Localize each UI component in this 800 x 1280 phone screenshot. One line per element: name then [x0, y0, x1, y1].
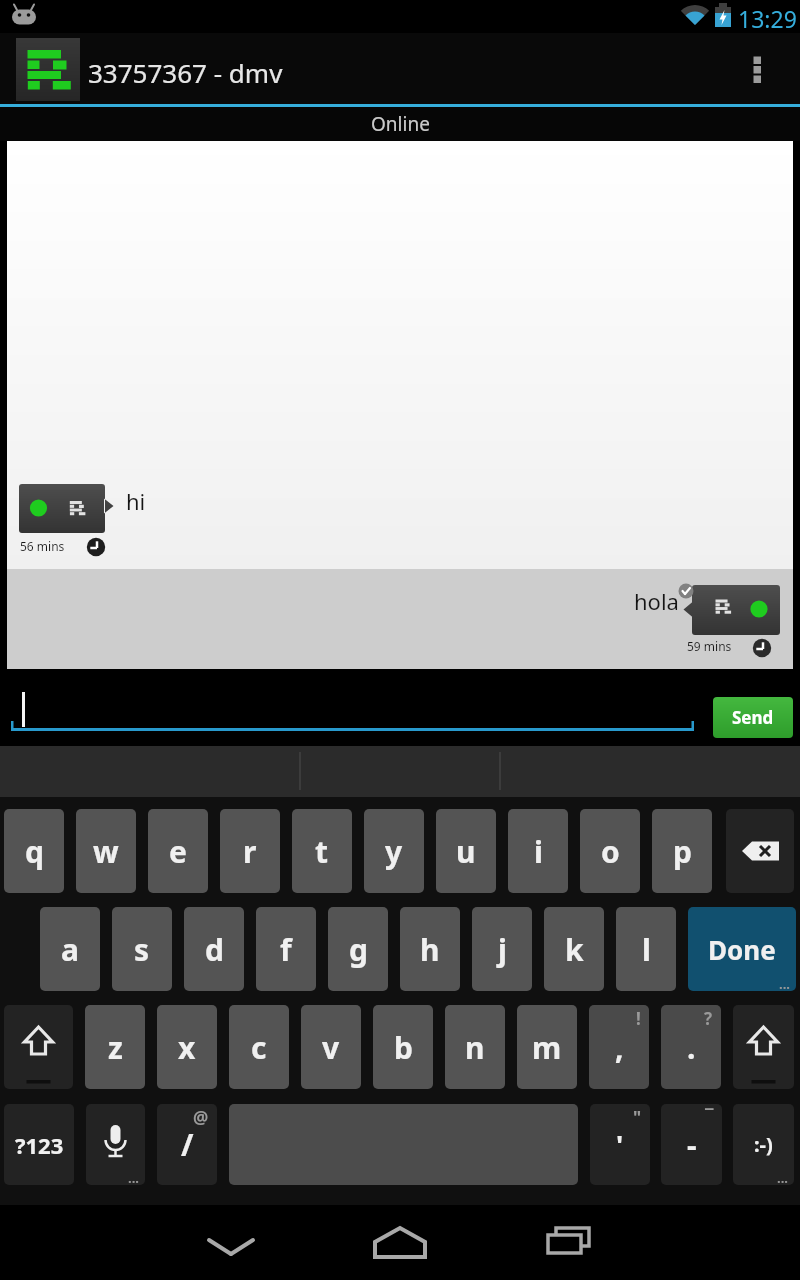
- staticText: c: [251, 1027, 267, 1068]
- button[interactable]: .: [661, 1005, 721, 1089]
- staticText: @: [193, 1106, 209, 1129]
- staticText: Send: [732, 706, 774, 729]
- button[interactable]: h: [400, 907, 460, 991]
- staticText: b: [394, 1027, 413, 1068]
- button[interactable]: ,: [589, 1005, 649, 1089]
- button[interactable]: q: [4, 809, 64, 893]
- staticText: /: [181, 1124, 194, 1165]
- staticText: ‾: [705, 1106, 714, 1129]
- button[interactable]: a: [40, 907, 100, 991]
- staticText: 13:29: [738, 3, 797, 34]
- staticText: 56 mins: [20, 538, 65, 554]
- button[interactable]: p: [652, 809, 712, 893]
- button[interactable]: [4, 1005, 73, 1089]
- staticText: j: [498, 929, 507, 970]
- button[interactable]: f: [256, 907, 316, 991]
- staticText: i: [534, 831, 543, 872]
- button[interactable]: m: [517, 1005, 577, 1089]
- staticText: ?: [704, 1007, 713, 1030]
- staticText: 59 mins: [687, 638, 732, 654]
- button[interactable]: k: [544, 907, 604, 991]
- staticText: .: [687, 1027, 696, 1068]
- staticText: Online: [371, 111, 430, 137]
- staticText: :-): [754, 1131, 773, 1158]
- staticText: s: [134, 929, 150, 970]
- staticText: hola: [634, 586, 679, 616]
- staticText: ...: [779, 975, 790, 991]
- button[interactable]: i: [508, 809, 568, 893]
- staticText: -: [687, 1124, 697, 1165]
- button[interactable]: d: [184, 907, 244, 991]
- staticText: t: [315, 831, 329, 872]
- staticText: o: [601, 831, 620, 872]
- button[interactable]: u: [436, 809, 496, 893]
- button[interactable]: j: [472, 907, 532, 991]
- staticText: !: [636, 1007, 641, 1030]
- button[interactable]: b: [373, 1005, 433, 1089]
- button[interactable]: /: [157, 1104, 217, 1185]
- button[interactable]: t: [292, 809, 352, 893]
- button[interactable]: w: [76, 809, 136, 893]
- button[interactable]: [726, 809, 794, 893]
- button[interactable]: ?123: [4, 1104, 74, 1185]
- staticText: 33757367 - dmv: [88, 55, 283, 90]
- button[interactable]: :-): [733, 1104, 794, 1185]
- button[interactable]: x: [157, 1005, 217, 1089]
- staticText: a: [61, 929, 79, 970]
- button[interactable]: z: [85, 1005, 145, 1089]
- staticText: ...: [777, 1169, 788, 1185]
- button[interactable]: r: [220, 809, 280, 893]
- button[interactable]: g: [328, 907, 388, 991]
- staticText: v: [322, 1027, 340, 1068]
- button[interactable]: [733, 1005, 794, 1089]
- button[interactable]: Done: [688, 907, 796, 991]
- staticText: ,: [615, 1027, 624, 1068]
- staticText: h: [420, 929, 440, 970]
- button[interactable]: Send: [713, 697, 793, 738]
- button[interactable]: c: [229, 1005, 289, 1089]
- button[interactable]: s: [112, 907, 172, 991]
- staticText: y: [385, 831, 403, 872]
- staticText: ': [616, 1126, 624, 1163]
- staticText: r: [243, 831, 257, 872]
- staticText: w: [93, 831, 119, 872]
- staticText: z: [108, 1027, 123, 1068]
- staticText: ...: [128, 1169, 139, 1185]
- staticText: d: [205, 929, 224, 970]
- staticText: g: [349, 929, 368, 970]
- staticText: Done: [708, 932, 776, 967]
- button[interactable]: l: [616, 907, 676, 991]
- button[interactable]: e: [148, 809, 208, 893]
- staticText: p: [673, 831, 692, 872]
- button[interactable]: -: [661, 1104, 722, 1185]
- button[interactable]: ': [590, 1104, 650, 1185]
- staticText: u: [456, 831, 476, 872]
- staticText: hi: [126, 486, 146, 516]
- button[interactable]: [11, 686, 694, 734]
- staticText: l: [642, 929, 651, 970]
- staticText: q: [25, 831, 44, 872]
- staticText: ": [633, 1106, 642, 1129]
- button[interactable]: o: [580, 809, 640, 893]
- button[interactable]: y: [364, 809, 424, 893]
- button[interactable]: ...: [86, 1104, 145, 1185]
- staticText: n: [465, 1027, 485, 1068]
- staticText: m: [532, 1027, 562, 1068]
- button[interactable]: v: [301, 1005, 361, 1089]
- staticText: x: [178, 1027, 196, 1068]
- staticText: ?123: [15, 1130, 64, 1160]
- staticText: k: [565, 929, 584, 970]
- button[interactable]: n: [445, 1005, 505, 1089]
- staticText: e: [169, 831, 187, 872]
- staticText: f: [280, 929, 292, 970]
